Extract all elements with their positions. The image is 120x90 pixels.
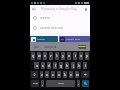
staticText: d — [48, 64, 50, 68]
staticText: z — [41, 73, 43, 77]
staticText: h — [66, 64, 68, 68]
staticText: q — [32, 54, 34, 58]
staticText: metrro — [40, 16, 50, 20]
staticText: ?123 — [33, 82, 38, 85]
staticText: java — [34, 45, 39, 49]
button[interactable]: a — [34, 62, 39, 69]
button[interactable]: o — [79, 52, 83, 60]
button[interactable]: p — [85, 52, 89, 60]
button[interactable]: i — [73, 52, 77, 60]
staticText: Polski — [58, 82, 64, 85]
staticText: e — [44, 54, 46, 58]
button[interactable]: ?123 — [31, 80, 39, 87]
staticText: a — [36, 64, 38, 68]
button[interactable]: y — [61, 52, 65, 60]
button[interactable]: Search — [82, 80, 89, 87]
button[interactable]: , — [41, 80, 44, 87]
button[interactable]: k — [77, 62, 81, 69]
staticText: u — [68, 54, 70, 58]
button[interactable]: v — [57, 71, 61, 78]
button[interactable]: Back — [30, 5, 38, 13]
staticText: , — [42, 82, 43, 86]
staticText: Pobierz teraz — [66, 38, 81, 41]
button[interactable]: h — [65, 62, 69, 69]
staticText: g — [60, 64, 62, 68]
staticText: p — [86, 54, 88, 58]
staticText: t — [56, 54, 58, 58]
button[interactable]: x — [45, 71, 49, 78]
staticText: i — [75, 54, 76, 58]
button[interactable]: Zobacz — [30, 36, 58, 42]
button[interactable]: w — [37, 52, 41, 60]
button[interactable]: f — [53, 62, 57, 69]
button[interactable]: z — [40, 71, 43, 78]
staticText: Zainstaluj — [78, 45, 86, 49]
staticText: Zobacz — [37, 38, 45, 41]
button[interactable]: c — [51, 71, 55, 78]
button[interactable]: Polski — [46, 80, 75, 87]
button[interactable]: e — [43, 52, 47, 60]
button[interactable]: u — [67, 52, 71, 60]
staticText: b — [64, 73, 66, 77]
button[interactable]: t — [55, 52, 59, 60]
staticText: v — [58, 73, 60, 77]
button[interactable]: m — [75, 71, 79, 78]
button[interactable]: metrro — [30, 13, 90, 23]
staticText: uczesie stto scat — [40, 26, 63, 30]
staticText: k — [78, 64, 80, 68]
button[interactable]: Shift — [31, 71, 38, 78]
button[interactable]: Voice search — [82, 5, 90, 13]
button[interactable]: j — [71, 62, 75, 69]
staticText: o — [80, 54, 82, 58]
staticText: . — [78, 82, 79, 86]
staticText: y — [62, 54, 64, 58]
staticText: f — [55, 64, 56, 68]
staticText: GP — [61, 38, 64, 41]
staticText: nawigacja — [44, 45, 57, 49]
button[interactable]: uczesie stto scat — [30, 23, 90, 33]
button[interactable]: b — [63, 71, 67, 78]
button[interactable]: . — [77, 80, 80, 87]
button[interactable]: n — [69, 71, 73, 78]
staticText: m — [76, 73, 79, 77]
staticText: s — [42, 64, 44, 68]
button[interactable]: s — [41, 62, 45, 69]
button[interactable]: Zainstaluj — [78, 45, 86, 49]
button[interactable]: Backspace — [81, 71, 89, 78]
button[interactable]: g — [59, 62, 63, 69]
staticText: Wyszukaj w Google Play — [41, 7, 77, 11]
staticText: x — [46, 73, 48, 77]
staticText: c — [52, 73, 54, 77]
staticText: w — [38, 54, 41, 58]
button[interactable]: d — [47, 62, 51, 69]
staticText: n — [70, 73, 72, 77]
button[interactable]: q — [31, 52, 35, 60]
staticText: j — [73, 64, 74, 68]
button[interactable]: r — [49, 52, 53, 60]
staticText: r — [50, 54, 52, 58]
staticText: l — [85, 64, 86, 68]
button[interactable]: l — [83, 62, 87, 69]
button[interactable]: GP — [59, 36, 90, 42]
